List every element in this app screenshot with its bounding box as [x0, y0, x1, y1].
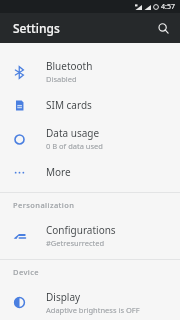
staticText: Device: [13, 267, 40, 277]
button[interactable]: Display: [0, 284, 180, 320]
staticText: Bluetooth: [46, 59, 93, 73]
button[interactable]: Search: [152, 17, 174, 39]
staticText: Data usage: [46, 126, 100, 140]
staticText: 4:57: [161, 2, 175, 12]
button[interactable]: Bluetooth: [0, 53, 180, 90]
staticText: Disabled: [46, 74, 77, 84]
staticText: Configurations: [46, 223, 116, 237]
staticText: Display: [46, 290, 81, 304]
staticText: More: [46, 165, 71, 179]
staticText: SIM cards: [46, 98, 92, 112]
button[interactable]: More: [0, 157, 180, 187]
button[interactable]: Configurations: [0, 217, 180, 254]
staticText: Settings: [13, 20, 60, 36]
button[interactable]: Data usage: [0, 120, 180, 157]
staticText: 0 B of data used: [46, 141, 103, 151]
button[interactable]: SIM cards: [0, 90, 180, 120]
staticText: #Getresurrected: [46, 238, 105, 248]
staticText: Personalization: [13, 200, 75, 210]
staticText: Adaptive brightness is OFF: [46, 305, 140, 315]
